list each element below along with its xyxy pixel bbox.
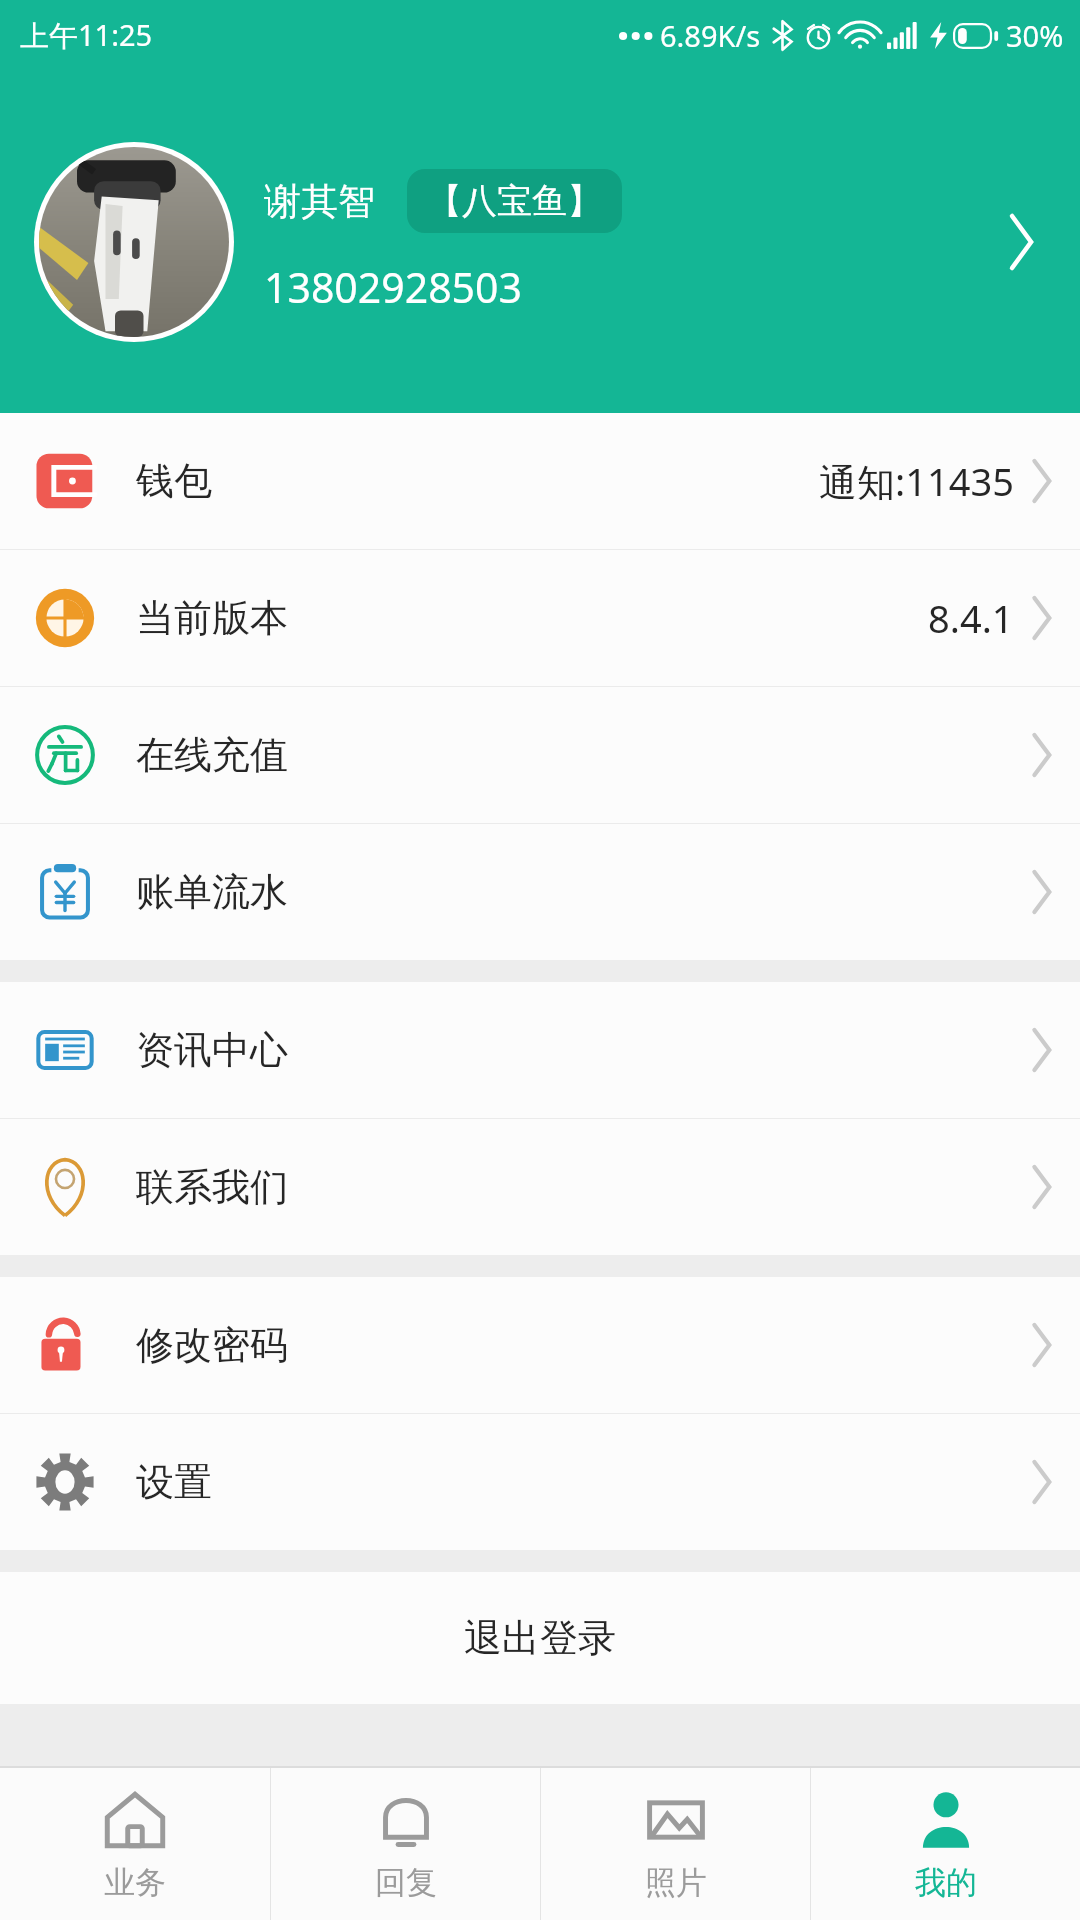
staticText: 我的 xyxy=(915,1863,977,1902)
button[interactable]: 联系我们 xyxy=(0,1119,1080,1255)
staticText: 13802928503 xyxy=(264,259,522,315)
button[interactable]: 在线充值 xyxy=(0,687,1080,823)
staticText: 通知:11435 xyxy=(819,455,1014,507)
button[interactable]: 我的 xyxy=(811,1768,1080,1920)
staticText: 钱包 xyxy=(136,457,212,505)
staticText: 谢其智 xyxy=(264,178,375,225)
staticText: 30% xyxy=(1006,16,1064,55)
button[interactable]: 退出登录 xyxy=(0,1572,1080,1704)
button[interactable]: 回复 xyxy=(271,1768,540,1920)
button[interactable]: 照片 xyxy=(541,1768,810,1920)
staticText: 【八宝鱼】 xyxy=(427,179,602,223)
button[interactable]: 资讯中心 xyxy=(0,982,1080,1118)
other: Open profile xyxy=(988,209,1054,275)
staticText: 当前版本 xyxy=(136,594,288,642)
staticText: 联系我们 xyxy=(136,1163,288,1211)
staticText: 6.89K/s xyxy=(660,16,761,55)
button[interactable]: 当前版本 xyxy=(0,550,1080,686)
button[interactable]: 修改密码 xyxy=(0,1277,1080,1413)
staticText: 修改密码 xyxy=(136,1321,288,1369)
staticText: 业务 xyxy=(104,1863,166,1902)
staticText: 照片 xyxy=(645,1863,707,1902)
button[interactable]: 谢其智 xyxy=(0,70,1080,413)
button[interactable]: 业务 xyxy=(0,1768,270,1920)
staticText: 资讯中心 xyxy=(136,1026,288,1074)
button[interactable]: 账单流水 xyxy=(0,824,1080,960)
button[interactable]: 设置 xyxy=(0,1414,1080,1550)
staticText: 退出登录 xyxy=(464,1614,616,1662)
staticText: 8.4.1 xyxy=(928,592,1014,644)
staticText: 账单流水 xyxy=(136,868,288,916)
button[interactable]: 钱包 xyxy=(0,413,1080,549)
staticText: 设置 xyxy=(136,1458,212,1506)
staticText: 上午11:25 xyxy=(20,15,153,55)
staticText: 回复 xyxy=(375,1863,437,1902)
staticText: 在线充值 xyxy=(136,731,288,779)
